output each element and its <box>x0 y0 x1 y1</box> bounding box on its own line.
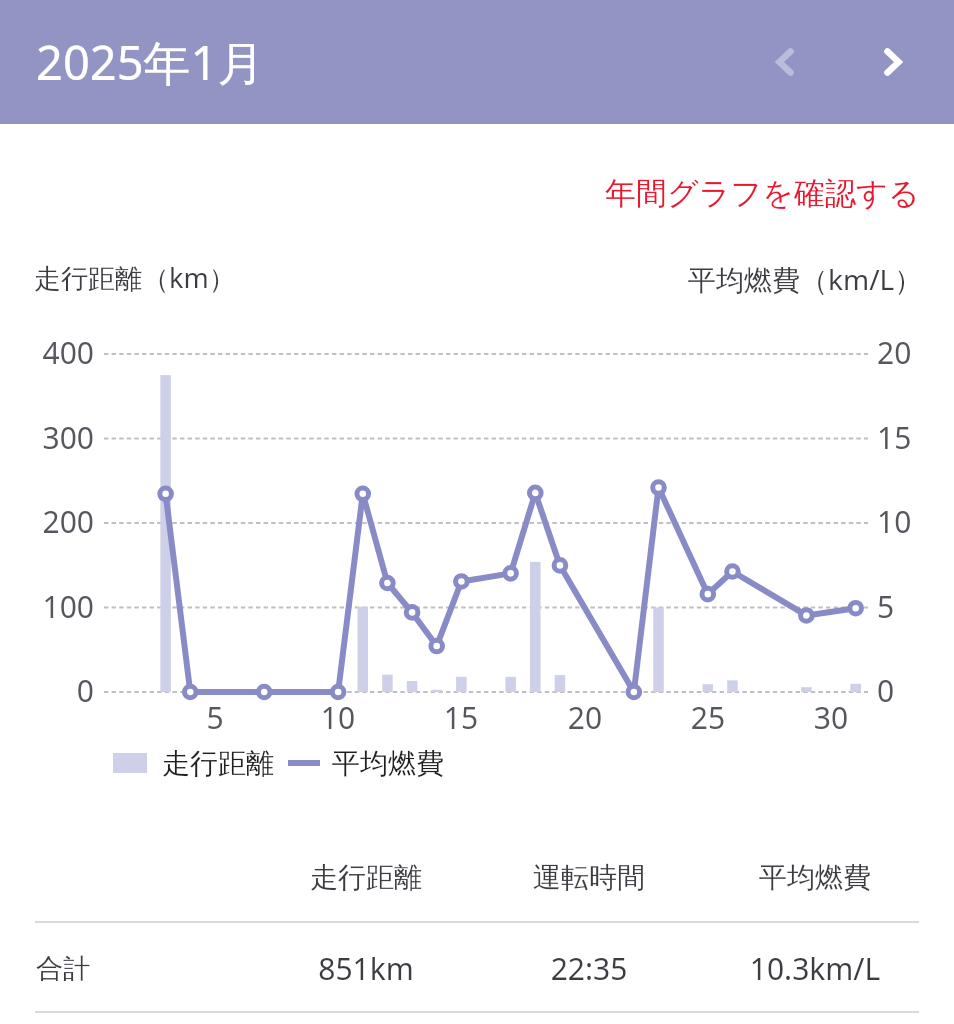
staticText: 300 <box>14 417 94 458</box>
staticText: 15 <box>431 697 491 738</box>
staticText: 25 <box>678 697 738 738</box>
staticText: 5 <box>185 697 245 738</box>
staticText: 10 <box>308 697 368 738</box>
staticText: 年間グラフを確認する <box>605 174 920 213</box>
staticText: 平均燃費 <box>725 860 905 895</box>
staticText: 運転時間 <box>499 860 679 895</box>
staticText: 平均燃費 <box>332 746 444 781</box>
button[interactable]: Next month <box>857 26 929 98</box>
staticText: 10.3km/L <box>715 948 915 989</box>
staticText: 平均燃費（km/L） <box>688 260 923 298</box>
staticText: 200 <box>14 501 94 542</box>
staticText: 851km <box>266 948 466 989</box>
staticText: 20 <box>877 332 937 373</box>
staticText: 合計 <box>36 952 90 986</box>
button[interactable]: Previous month <box>749 26 821 98</box>
staticText: 走行距離 <box>162 746 274 781</box>
staticText: 100 <box>14 586 94 627</box>
staticText: 15 <box>877 417 937 458</box>
staticText: 走行距離 <box>276 860 456 895</box>
staticText: 2025年1月 <box>36 30 265 94</box>
button[interactable]: 年間グラフを確認する <box>581 153 954 233</box>
staticText: 22:35 <box>489 948 689 989</box>
staticText: 0 <box>14 670 94 711</box>
staticText: 20 <box>555 697 615 738</box>
staticText: 0 <box>877 670 937 711</box>
staticText: 5 <box>877 586 937 627</box>
staticText: 10 <box>877 501 937 542</box>
staticText: 走行距離（km） <box>34 259 236 296</box>
staticText: 30 <box>801 697 861 738</box>
staticText: 400 <box>14 332 94 373</box>
